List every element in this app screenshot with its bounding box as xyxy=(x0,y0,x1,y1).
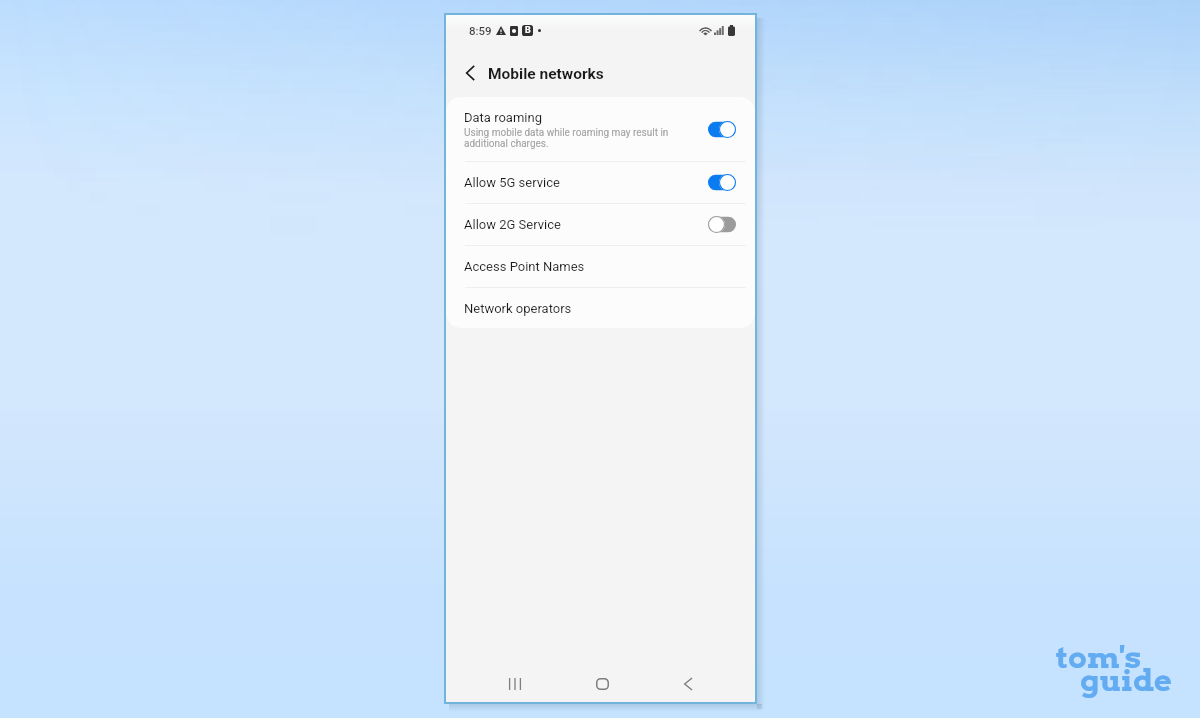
staticText: Data roaming xyxy=(464,110,542,125)
button[interactable]: Recent apps xyxy=(498,667,532,701)
button[interactable]: Navigate up xyxy=(453,56,487,90)
staticText: guide xyxy=(1080,661,1173,698)
staticText: Allow 5G service xyxy=(464,175,560,190)
staticText: Allow 2G Service xyxy=(464,217,561,232)
button[interactable]: Switch off xyxy=(708,216,736,233)
staticText: Network operators xyxy=(464,301,572,316)
button[interactable]: Back xyxy=(671,667,705,701)
button[interactable]: Network operators xyxy=(446,288,755,328)
staticText: Using mobile data while roaming may resu… xyxy=(464,127,669,149)
button[interactable]: Switch on xyxy=(708,174,736,191)
button[interactable]: Access Point Names xyxy=(446,246,755,287)
staticText: Mobile networks xyxy=(488,65,604,83)
staticText: B xyxy=(525,25,531,36)
button[interactable]: Allow 5G service xyxy=(446,162,755,203)
button[interactable]: Allow 2G Service xyxy=(446,204,755,245)
staticText: Access Point Names xyxy=(464,259,585,274)
staticText: tom's xyxy=(1056,638,1142,675)
staticText: 8:59 xyxy=(469,24,492,37)
button[interactable]: Home xyxy=(585,667,619,701)
button[interactable]: Data roaming xyxy=(446,97,755,161)
button[interactable]: Switch on xyxy=(708,121,736,138)
